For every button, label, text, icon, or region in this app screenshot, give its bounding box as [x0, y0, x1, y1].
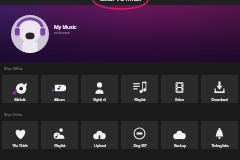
button[interactable]: Profile avatar — [11, 15, 49, 53]
button[interactable]: Upload — [81, 121, 118, 149]
staticText: Nhạc Offline — [4, 67, 23, 71]
button[interactable]: Nghệ sĩ — [81, 75, 118, 103]
button[interactable]: Backup — [161, 121, 198, 149]
staticText: Album — [54, 97, 65, 102]
staticText: Nghệ sĩ — [93, 97, 106, 102]
button[interactable]: Playlist — [121, 75, 158, 103]
button[interactable]: Album — [41, 75, 78, 103]
staticText: Zing VIP — [133, 143, 147, 148]
button[interactable]: Yêu Thích — [2, 121, 38, 149]
staticText: nickname — [54, 30, 70, 35]
staticText: Nhạc cá nhân — [100, 0, 141, 1]
staticText: Backup — [174, 143, 186, 148]
staticText: Playlist — [54, 143, 66, 148]
staticText: My Music — [54, 24, 77, 31]
button[interactable]: Video — [161, 75, 198, 103]
staticText: Upload — [94, 143, 106, 148]
staticText: Thông báo — [211, 143, 229, 148]
staticText: Yêu Thích — [12, 143, 28, 148]
button[interactable]: Playlist — [41, 121, 78, 149]
button[interactable]: Bài hát — [2, 75, 38, 103]
staticText: Bài hát — [14, 97, 26, 102]
staticText: Nhạc Online — [4, 113, 23, 117]
button[interactable]: Thông báo — [201, 121, 238, 149]
button[interactable]: Download — [201, 75, 238, 103]
staticText: Video — [175, 97, 184, 102]
staticText: Playlist — [134, 97, 146, 102]
staticText: Download — [211, 97, 228, 102]
button[interactable]: Zing VIP — [121, 121, 158, 149]
